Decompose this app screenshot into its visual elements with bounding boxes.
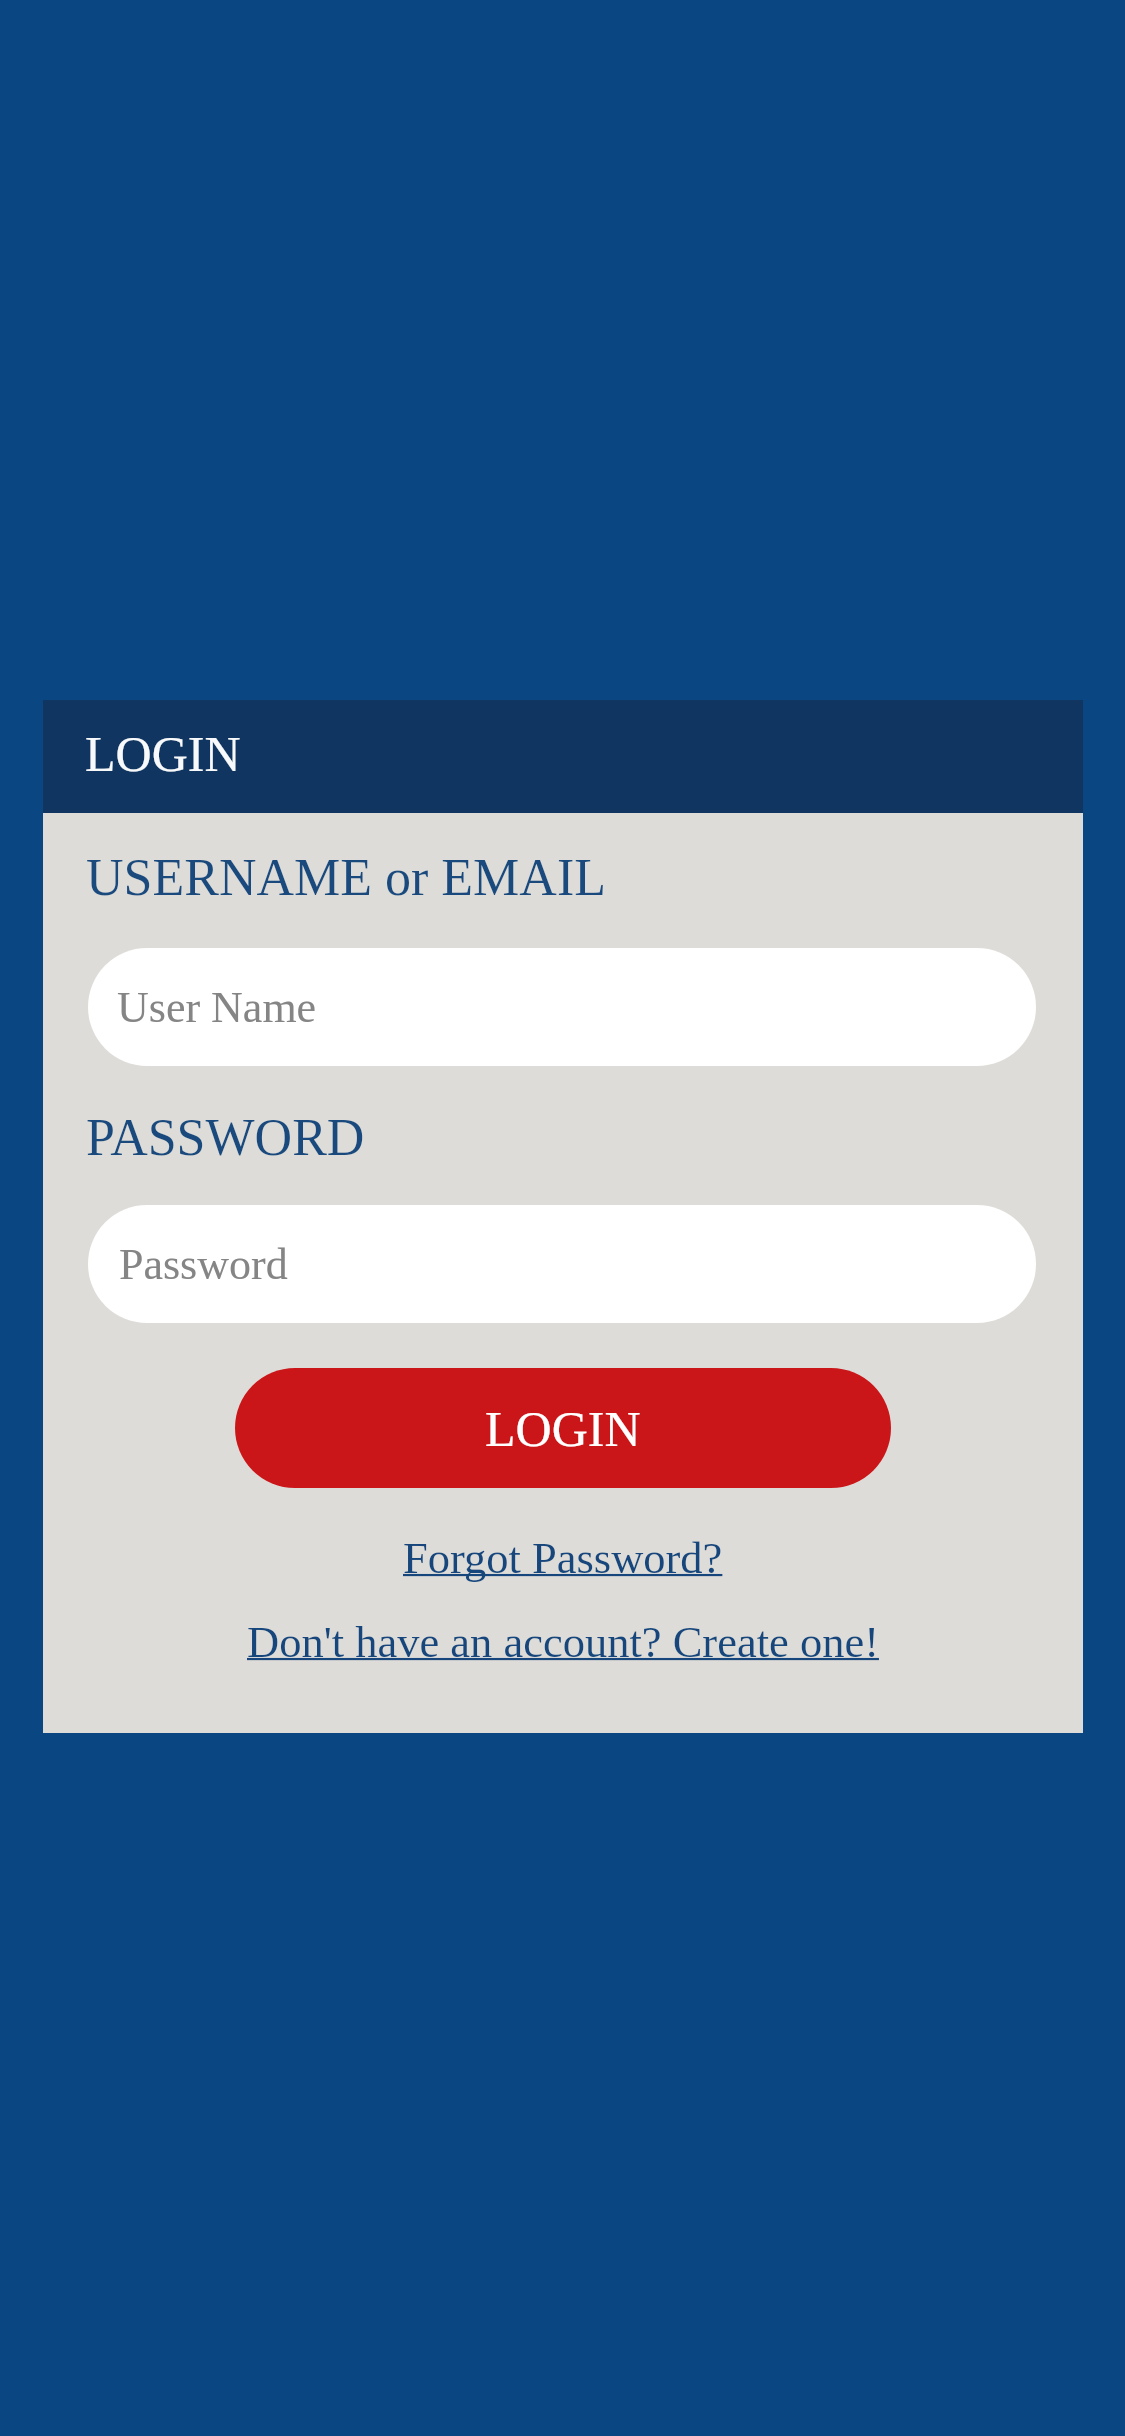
button[interactable]: Forgot Password? [403, 1533, 723, 1582]
staticText: USERNAME or EMAIL [86, 849, 606, 907]
button[interactable]: Password [88, 1205, 1036, 1323]
staticText: LOGIN [85, 726, 241, 781]
staticText: Password [119, 1240, 288, 1289]
button[interactable]: LOGIN [235, 1368, 891, 1488]
staticText: PASSWORD [86, 1109, 365, 1167]
button[interactable]: Don't have an account? Create one! [247, 1617, 879, 1666]
staticText: LOGIN [485, 1401, 641, 1456]
staticText: User Name [117, 983, 317, 1032]
button[interactable]: User Name [88, 948, 1036, 1066]
